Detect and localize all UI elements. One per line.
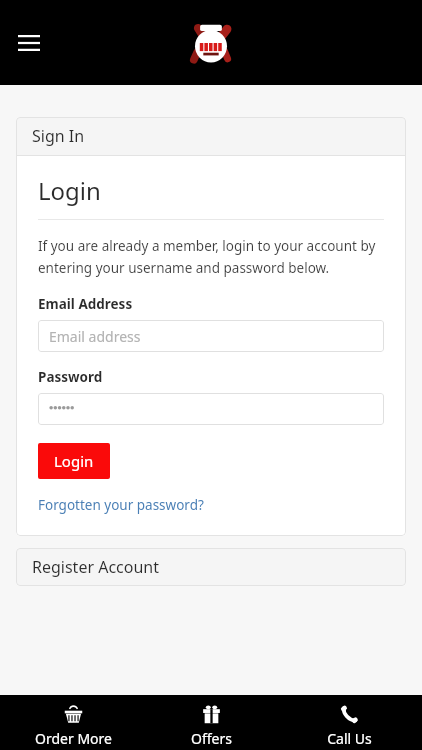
button[interactable]: Email address: [38, 320, 384, 352]
staticText: Order More: [35, 729, 112, 748]
staticText: If you are already a member, login to yo…: [38, 237, 384, 277]
staticText: Login: [54, 451, 94, 471]
staticText: Register Account: [32, 556, 159, 578]
button[interactable]: Login: [38, 443, 110, 479]
staticText: Forgotten your password?: [38, 496, 204, 514]
staticText: Call Us: [327, 729, 372, 748]
staticText: Sign In: [32, 125, 85, 147]
staticText: Password: [38, 368, 103, 386]
button[interactable]: [38, 393, 384, 425]
button[interactable]: Menu: [6, 20, 52, 66]
button[interactable]: Offers: [146, 697, 276, 748]
staticText: Offers: [191, 729, 232, 748]
button[interactable]: Kilos logo: [177, 14, 245, 72]
button[interactable]: Call Us: [284, 697, 414, 748]
staticText: Email address: [49, 327, 141, 346]
button[interactable]: Sign In: [16, 117, 406, 155]
staticText: Login: [38, 174, 101, 207]
button[interactable]: Register Account: [16, 548, 406, 586]
button[interactable]: Forgotten your password?: [38, 496, 204, 514]
staticText: Email Address: [38, 295, 133, 313]
button[interactable]: Order More: [8, 697, 138, 748]
